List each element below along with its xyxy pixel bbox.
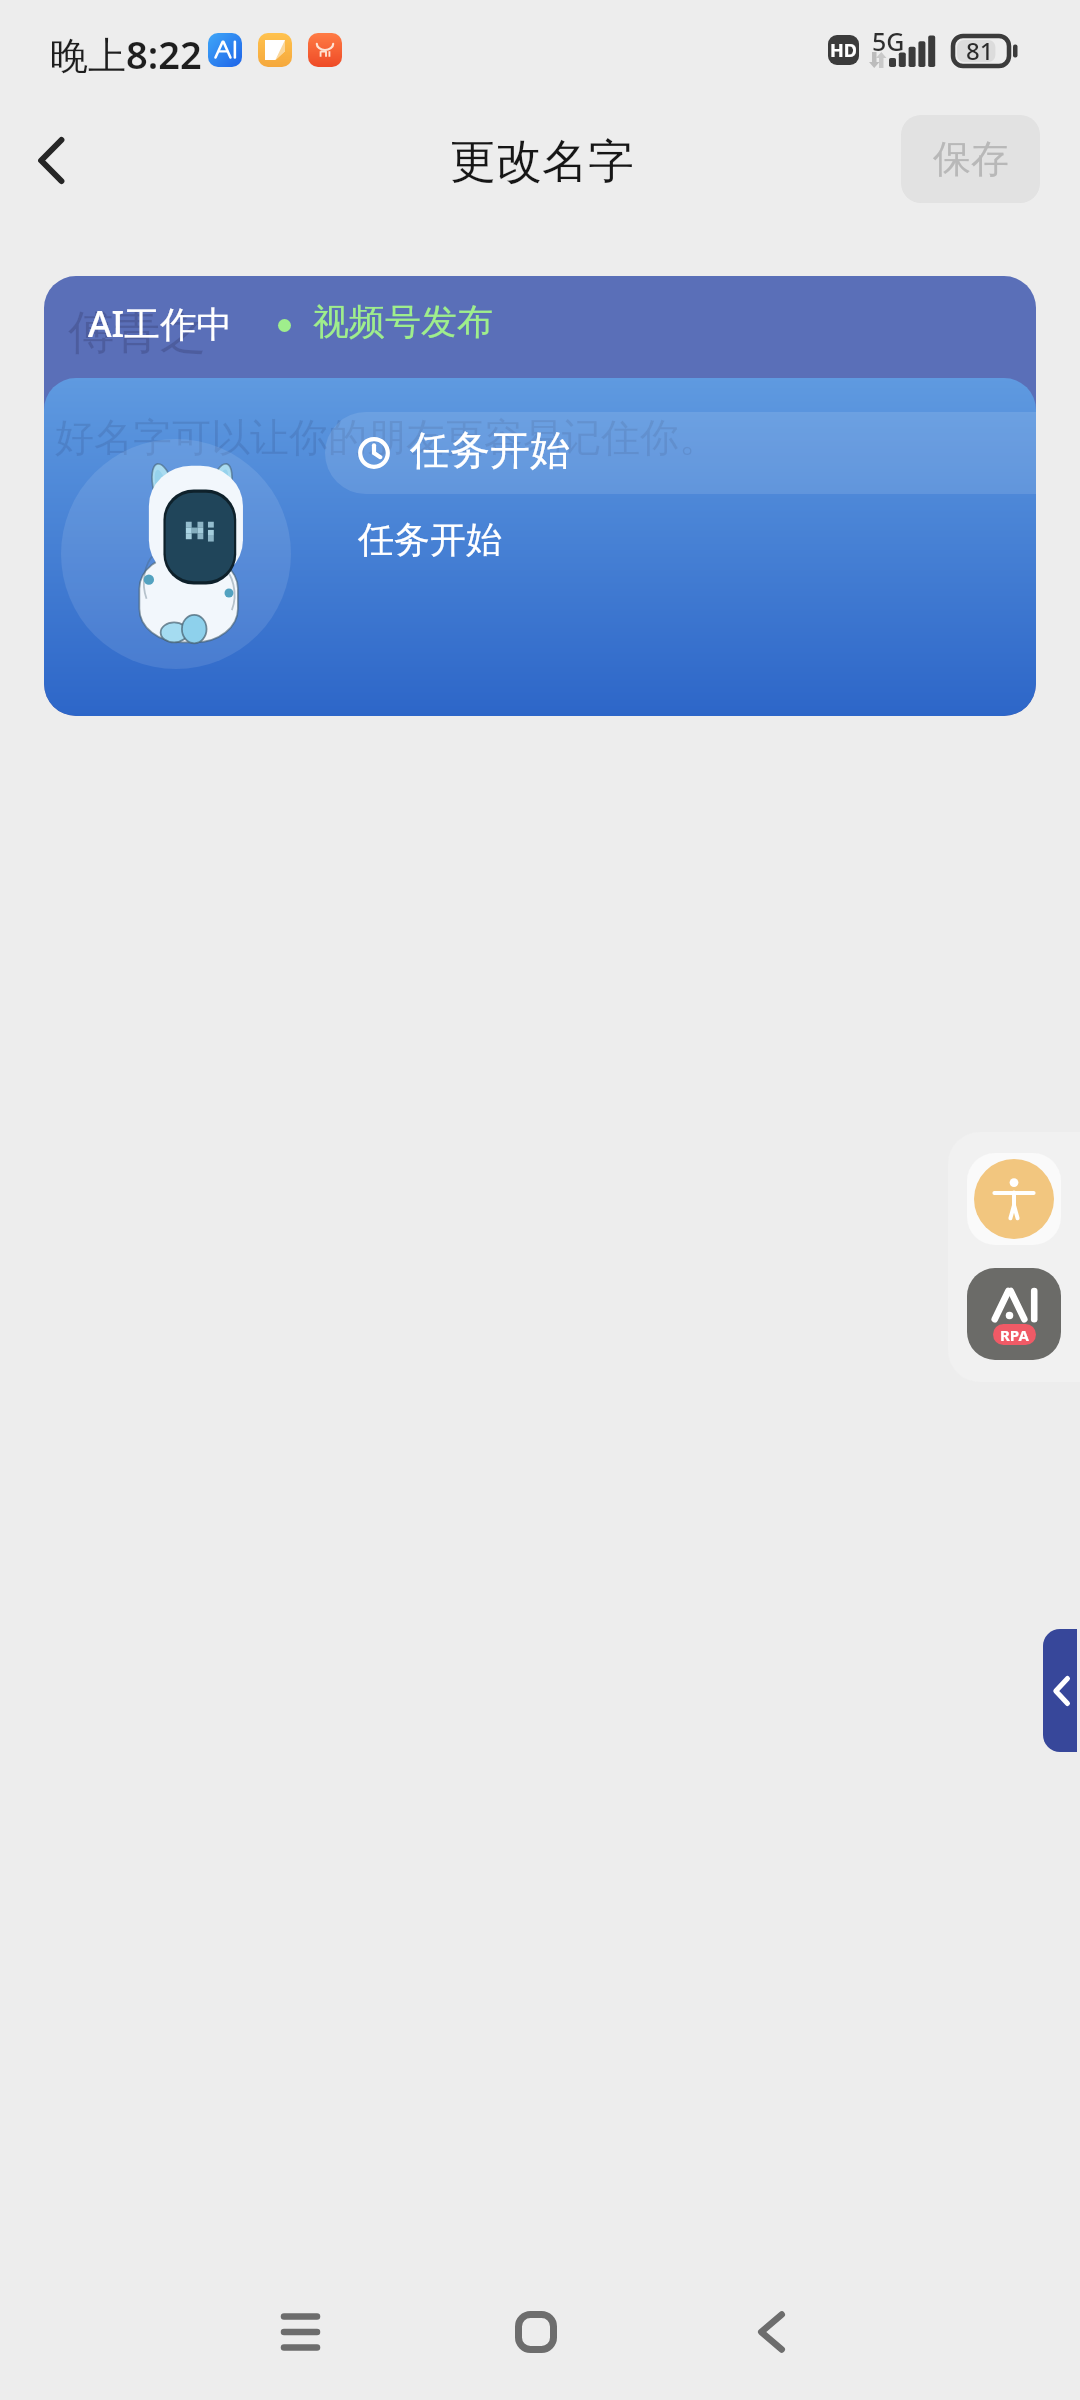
staticText: RPA [1000,1325,1029,1345]
button[interactable]: 傅青之 [44,276,1036,716]
button[interactable]: 保存 [901,115,1040,203]
button[interactable]: 任务开始 [325,412,1036,494]
button[interactable]: Recent apps [240,2272,360,2392]
button[interactable]: AI RPA [967,1268,1061,1360]
button[interactable]: Back [10,116,96,202]
button[interactable]: 任务开始 [325,509,1036,571]
staticText: 晚上8:22 [50,28,202,80]
staticText: HD [830,38,857,63]
button[interactable]: Back [711,2272,831,2392]
staticText: 更改名字 [450,133,634,191]
staticText: 视频号发布 [313,299,493,344]
button[interactable]: Expand panel [1043,1629,1077,1752]
staticText: 保存 [933,135,1009,183]
button[interactable]: Accessibility [967,1153,1061,1245]
staticText: 任务开始 [410,425,570,475]
staticText: 81 [966,34,994,66]
button[interactable]: Home [476,2272,596,2392]
staticText: 任务开始 [358,517,502,562]
staticText: AI工作中 [88,299,233,348]
staticText: 傅青之 [68,304,206,362]
staticText: 5G [872,24,905,58]
staticText: 好名字可以让你的朋友更容易记住你。 [55,413,718,462]
